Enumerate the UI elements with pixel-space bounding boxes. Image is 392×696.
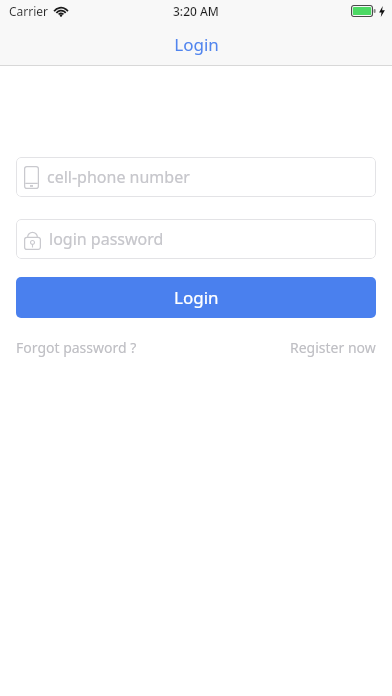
- button[interactable]: cell-phone number: [16, 157, 376, 197]
- staticText: login password: [49, 228, 164, 250]
- staticText: 3:20 AM: [173, 3, 219, 19]
- staticText: cell-phone number: [47, 166, 190, 188]
- button[interactable]: Login: [16, 277, 376, 318]
- staticText: Register now: [290, 338, 376, 357]
- staticText: Carrier: [9, 3, 49, 19]
- button[interactable]: Forgot password ?: [16, 336, 137, 359]
- button[interactable]: login password: [16, 219, 376, 259]
- staticText: Login: [174, 33, 219, 56]
- staticText: Forgot password ?: [16, 338, 137, 357]
- button[interactable]: Register now: [290, 336, 376, 359]
- staticText: Login: [174, 286, 219, 309]
